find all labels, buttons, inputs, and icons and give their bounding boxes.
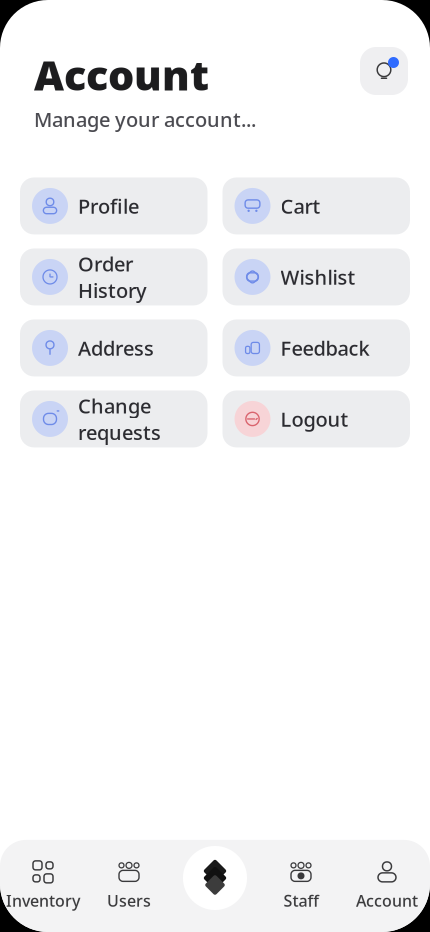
staticText: Cart [280, 193, 320, 219]
button[interactable]: Staff [258, 856, 344, 915]
button[interactable]: Logout [222, 390, 410, 447]
staticText: Profile [78, 193, 139, 219]
button[interactable]: Change requests [20, 390, 207, 447]
staticText: Address [78, 335, 154, 361]
staticText: Feedback [280, 335, 369, 361]
staticText: Logout [280, 406, 348, 432]
staticText: Account [34, 47, 209, 102]
staticText: Order History [78, 250, 147, 303]
staticText: Account [356, 890, 418, 911]
button[interactable]: Cart [222, 177, 410, 234]
button[interactable]: Profile [20, 177, 207, 234]
button[interactable]: Address [20, 319, 207, 376]
button[interactable]: Account [344, 856, 430, 915]
button[interactable]: Users [86, 856, 172, 915]
button[interactable]: Feedback [222, 319, 410, 376]
button[interactable]: Inventory [0, 856, 86, 915]
button[interactable]: Home [183, 846, 247, 910]
staticText: Users [107, 890, 151, 911]
staticText: Wishlist [280, 264, 355, 290]
staticText: Staff [283, 890, 318, 911]
staticText: Inventory [6, 890, 80, 911]
button[interactable]: Notifications [360, 47, 408, 95]
button[interactable]: Wishlist [222, 248, 410, 305]
staticText: Change requests [78, 392, 161, 445]
button[interactable]: Order History [20, 248, 207, 305]
staticText: Manage your account... [34, 106, 256, 132]
